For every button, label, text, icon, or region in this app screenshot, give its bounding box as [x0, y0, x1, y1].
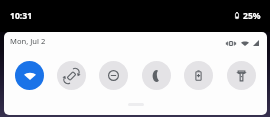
- button[interactable]: Night light: [142, 61, 171, 90]
- button[interactable]: Ringer vibrate: [226, 41, 236, 46]
- staticText: Mon, Jul 2: [10, 36, 46, 46]
- staticText: 25%: [243, 10, 261, 22]
- button[interactable]: Auto-rotate: [57, 61, 86, 90]
- button[interactable]: Mobile signal: [253, 40, 259, 46]
- staticText: 10:31: [10, 10, 33, 22]
- button[interactable]: Do Not Disturb: [99, 61, 128, 90]
- button[interactable]: Wi-Fi signal: [241, 41, 249, 46]
- button[interactable]: Wi-Fi: [15, 61, 44, 90]
- button[interactable]: Battery Saver: [184, 61, 213, 90]
- button[interactable]: Flashlight: [227, 61, 256, 90]
